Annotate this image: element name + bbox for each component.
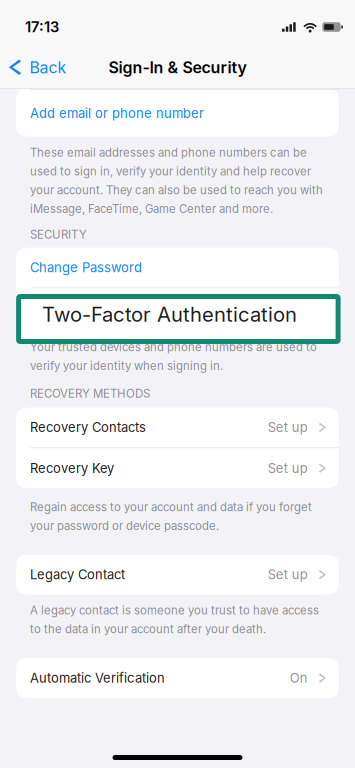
staticText: Two-Factor Authentication (42, 302, 297, 327)
staticText: Recovery Key (30, 460, 114, 476)
staticText: SECURITY (30, 228, 87, 241)
staticText: Set up (268, 420, 308, 435)
staticText: On (290, 670, 308, 686)
button[interactable]: Recovery Key (16, 448, 339, 488)
staticText: Legacy Contact (30, 567, 125, 582)
staticText: Regain access to your account and data i… (30, 500, 312, 533)
staticText: Back (30, 58, 67, 77)
staticText: Recovery Contacts (30, 420, 146, 435)
staticText: RECOVERY METHODS (30, 386, 150, 400)
button[interactable]: Back (0, 46, 77, 88)
button[interactable]: Automatic Verification (16, 658, 339, 698)
button[interactable]: Add email or phone number (16, 90, 339, 137)
staticText: A legacy contact is someone you trust to… (30, 604, 319, 636)
staticText: These email addresses and phone numbers … (30, 146, 323, 216)
staticText: Set up (268, 567, 308, 582)
staticText: Set up (268, 460, 308, 476)
staticText: Sign-In & Security (108, 58, 246, 77)
button[interactable]: Legacy Contact (16, 555, 339, 595)
staticText: 17:13 (25, 18, 59, 36)
staticText: Your trusted devices and phone numbers a… (30, 340, 317, 373)
staticText: Add email or phone number (30, 105, 204, 121)
button[interactable]: Recovery Contacts (16, 407, 339, 447)
staticText: Change Password (30, 260, 142, 275)
button[interactable]: Change Password (16, 247, 339, 287)
staticText: Automatic Verification (30, 670, 165, 686)
button[interactable]: Two-Factor Authentication (16, 288, 339, 340)
